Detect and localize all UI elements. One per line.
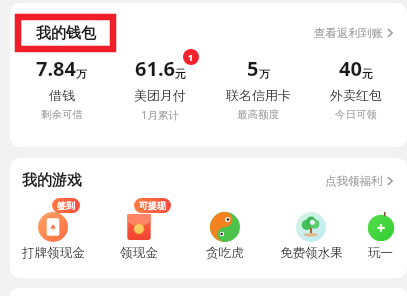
staticText: 美团月付: [134, 87, 186, 103]
button[interactable]: 查看返利到账: [314, 26, 393, 40]
staticText: 万: [259, 67, 270, 81]
button[interactable]: 5: [209, 55, 307, 121]
button[interactable]: 40: [307, 55, 405, 121]
staticText: 点我领福利: [325, 174, 383, 188]
other: 打牌领现金: [38, 212, 68, 242]
staticText: 借钱: [49, 87, 75, 103]
staticText: 可提现: [139, 200, 166, 211]
button[interactable]: 玩一玩: [354, 198, 407, 261]
staticText: 剩余可借: [41, 108, 83, 121]
other: 免费领水果: [296, 212, 326, 242]
other: 贪吃虎: [210, 212, 240, 242]
staticText: 5: [247, 55, 259, 82]
staticText: 61.6: [135, 55, 175, 82]
staticText: 元: [362, 67, 373, 81]
staticText: 我的钱包: [36, 24, 96, 43]
staticText: 查看返利到账: [314, 26, 383, 40]
staticText: 40: [339, 55, 362, 82]
staticText: 玩一: [368, 245, 393, 261]
staticText: 1: [188, 51, 194, 63]
staticText: 领现金: [120, 245, 158, 261]
staticText: 7.84: [36, 55, 76, 82]
staticText: 打牌领现金: [22, 245, 85, 261]
staticText: 今日可领: [335, 108, 377, 121]
staticText: 联名信用卡: [226, 87, 291, 103]
other: 领现金: [124, 212, 154, 242]
staticText: 最高额度: [237, 108, 279, 121]
button[interactable]: 打牌领现金: [10, 198, 96, 261]
staticText: 签到: [57, 200, 75, 211]
button[interactable]: 贪吃虎: [182, 198, 268, 261]
button[interactable]: 点我领福利: [325, 174, 393, 188]
staticText: 贪吃虎: [206, 245, 244, 261]
button[interactable]: 领现金: [96, 198, 182, 261]
button[interactable]: 免费领水果: [268, 198, 354, 261]
staticText: 万: [76, 67, 87, 81]
staticText: 元: [175, 67, 186, 81]
other: 玩一玩: [366, 212, 396, 242]
button[interactable]: 61.6: [111, 55, 209, 122]
staticText: 我的游戏: [22, 171, 82, 190]
staticText: 免费领水果: [280, 245, 343, 261]
button[interactable]: 7.84: [12, 55, 111, 121]
staticText: 外卖红包: [330, 87, 382, 103]
staticText: 1月累计: [141, 108, 179, 122]
